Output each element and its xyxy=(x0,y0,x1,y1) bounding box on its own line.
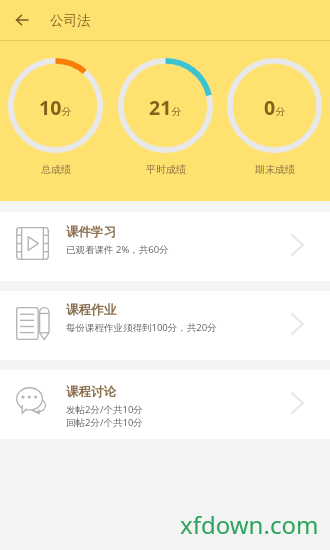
staticText: 每份课程作业须得到100分，共20分 xyxy=(66,321,217,334)
staticText: 平时成绩 xyxy=(146,163,186,176)
button[interactable]: 课程作业 xyxy=(0,291,330,360)
staticText: 课程作业 xyxy=(66,302,116,318)
staticText: 课程讨论 xyxy=(66,384,116,400)
staticText: 总成绩 xyxy=(41,163,71,176)
staticText: 期末成绩 xyxy=(255,163,295,176)
button[interactable]: 课程讨论 xyxy=(0,370,330,439)
button[interactable]: Open 课程讨论 xyxy=(286,370,330,414)
button[interactable]: Back xyxy=(0,0,40,40)
staticText: 已观看课件 2%，共60分 xyxy=(66,243,169,256)
staticText: 公司法 xyxy=(50,12,91,29)
button[interactable]: 课件学习 xyxy=(0,212,330,281)
staticText: 0分 xyxy=(264,94,286,121)
staticText: xfdown.com xyxy=(180,508,319,541)
staticText: 发帖2分/个共10分 xyxy=(66,403,143,416)
button[interactable]: Open 课件学习 xyxy=(286,212,330,256)
staticText: 21分 xyxy=(149,94,182,121)
button[interactable]: Open 课程作业 xyxy=(286,291,330,335)
staticText: 10分 xyxy=(39,94,72,121)
staticText: 课件学习 xyxy=(66,224,116,240)
staticText: 回帖2分/个共10分 xyxy=(66,416,143,429)
